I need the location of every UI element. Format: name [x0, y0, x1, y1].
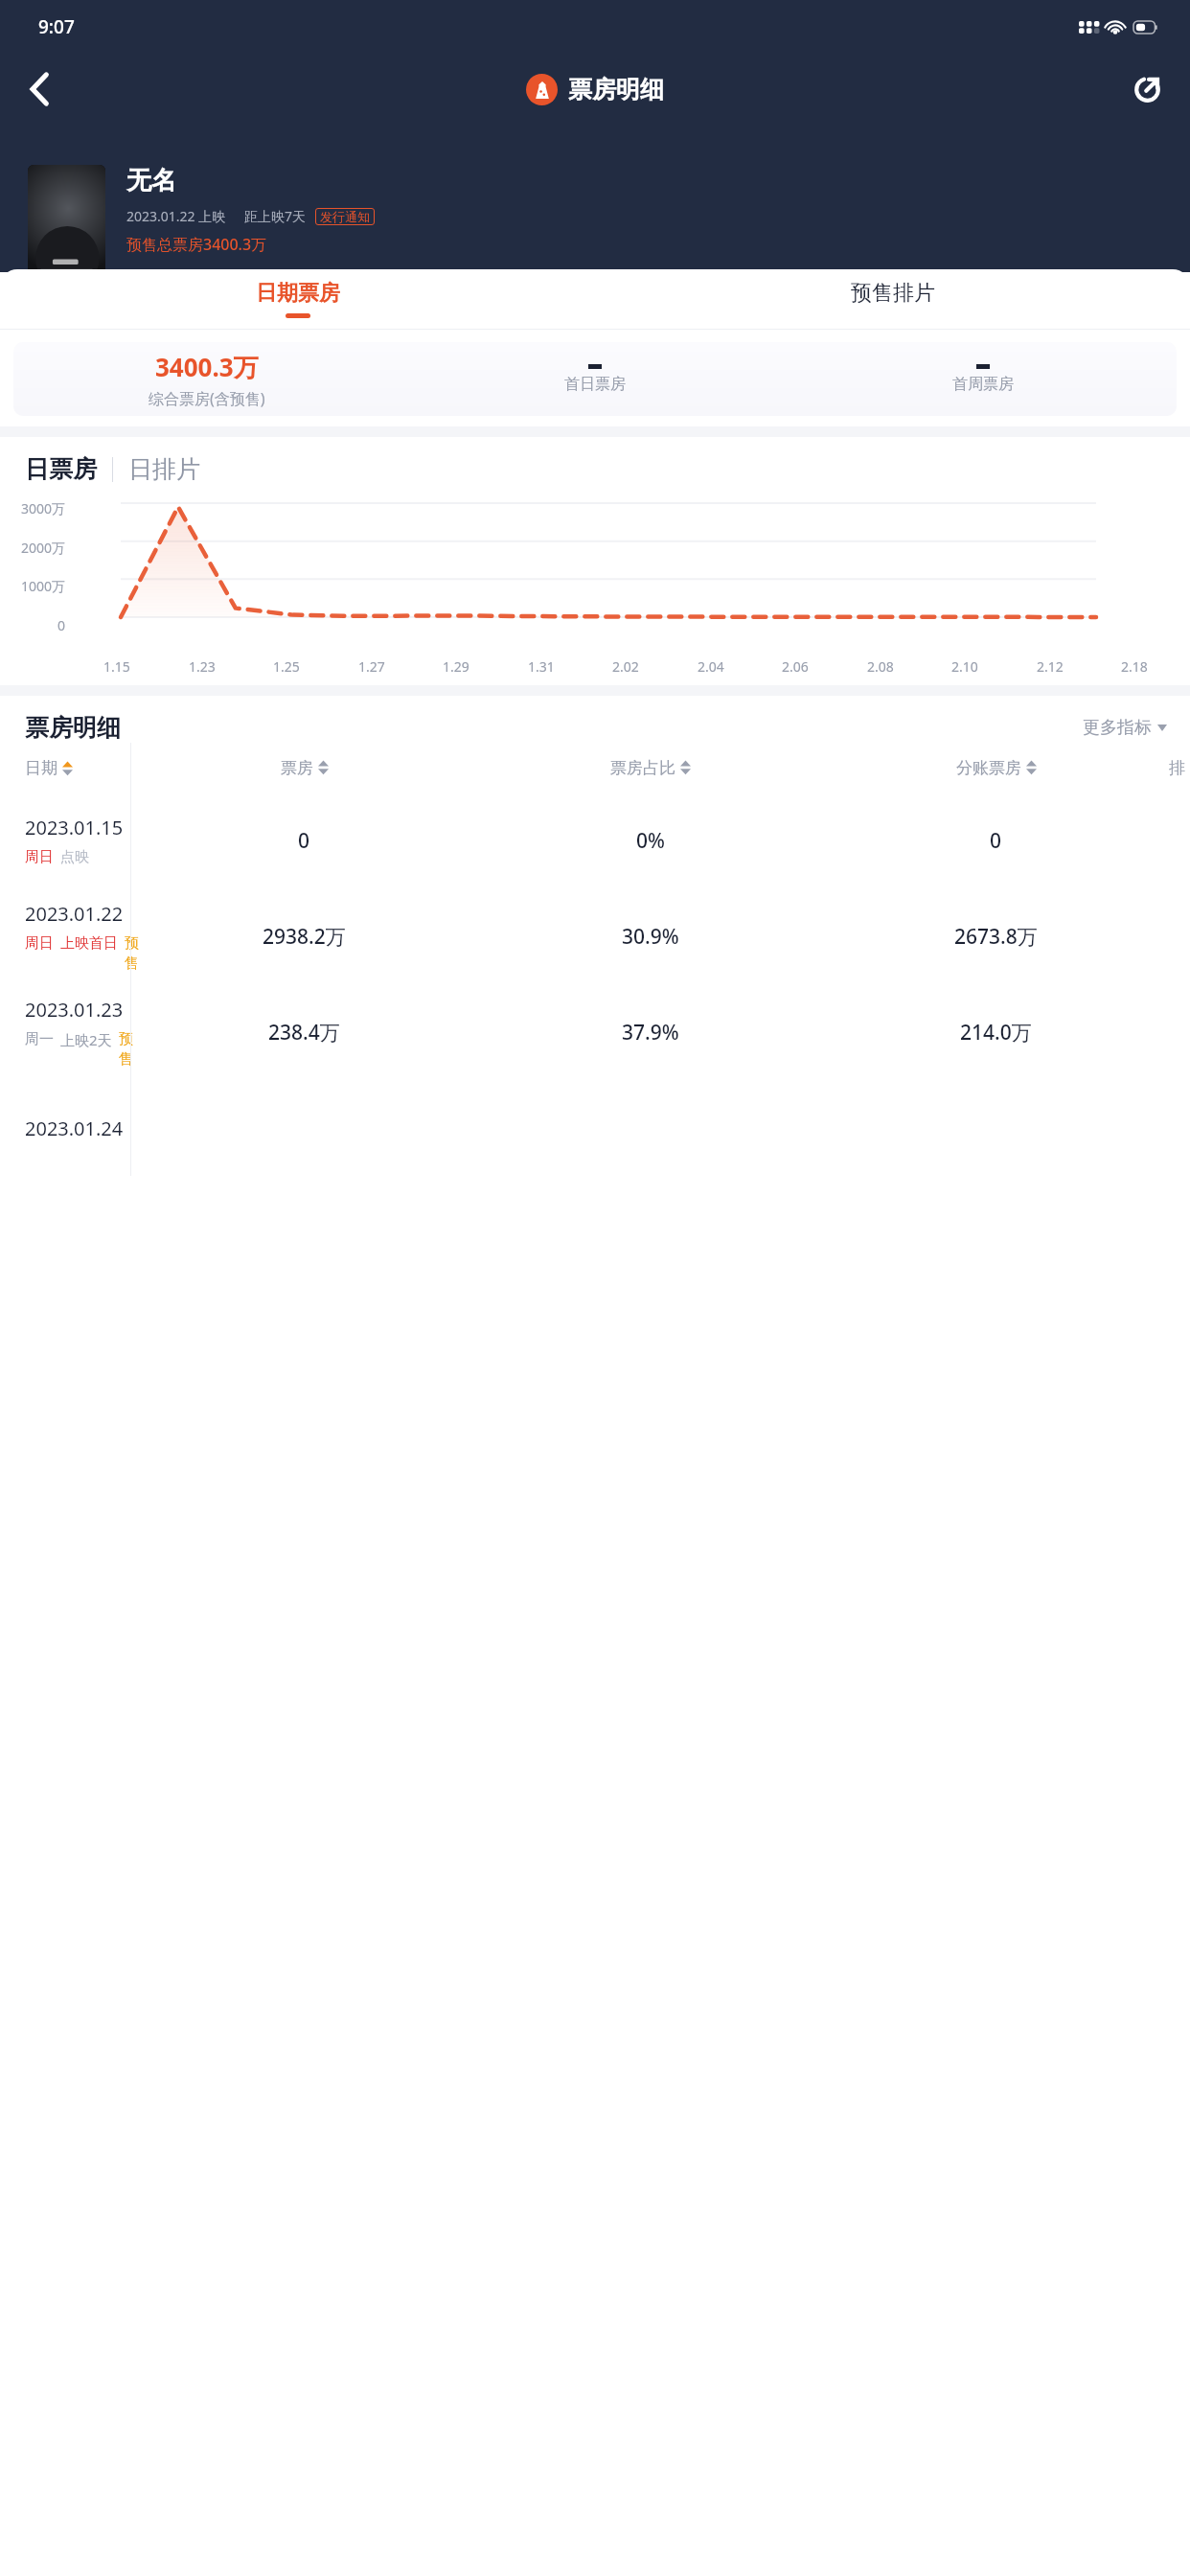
button[interactable]: 票房占比 [477, 743, 823, 793]
staticText: 2023.01.23 [25, 997, 124, 1023]
button[interactable]: 3400.3万 [13, 342, 1177, 416]
staticText: 238.4万 [268, 1019, 340, 1046]
staticText: 首日票房 [564, 375, 626, 394]
staticText: 2023.01.22 [25, 901, 124, 927]
staticText: 更多指标 [1083, 717, 1152, 739]
staticText: 上映2天 [60, 1030, 112, 1049]
staticText: 2.10 [951, 657, 978, 676]
button[interactable]: 无名 [28, 165, 1162, 283]
button[interactable]: 票房 [131, 743, 477, 793]
staticText: 分账票房 [956, 758, 1021, 778]
staticText: 2.08 [867, 657, 894, 676]
staticText: 9:07 [38, 14, 75, 39]
staticText: 1.31 [528, 657, 555, 676]
staticText: 37.9% [622, 1019, 679, 1046]
staticText: 1000万 [21, 577, 66, 595]
staticText: 1.23 [189, 657, 216, 676]
staticText: 日票房 [25, 454, 97, 484]
staticText: 上映首日 [60, 934, 118, 953]
staticText: 票房明细 [25, 713, 121, 743]
staticText: 票房占比 [610, 758, 675, 778]
staticText: 无名 [126, 165, 176, 196]
staticText: 2.02 [612, 657, 639, 676]
staticText: 预售 [125, 934, 130, 973]
button[interactable]: 2023.01.23 [0, 984, 1190, 1080]
button[interactable]: 分账票房 [823, 743, 1169, 793]
staticText: 发行通知 [320, 209, 370, 224]
staticText: 0 [57, 616, 66, 634]
button[interactable]: 日期票房 [0, 269, 595, 329]
staticText: 预售 [119, 1030, 130, 1069]
staticText: 周日 [25, 848, 54, 866]
button[interactable]: 日票房 [25, 454, 97, 484]
staticText: 2023.01.24 [25, 1115, 124, 1141]
staticText: 周一 [25, 1030, 54, 1048]
staticText: 2000万 [21, 539, 66, 557]
staticText: 综合票房(含预售) [149, 388, 265, 409]
staticText: 1.27 [358, 657, 385, 676]
staticText: 0 [298, 827, 310, 855]
staticText: 日排片 [128, 454, 200, 484]
staticText: 3000万 [21, 499, 66, 517]
button[interactable]: Back [13, 63, 65, 115]
staticText: 票房明细 [568, 75, 664, 104]
staticText: 日期 [25, 758, 57, 778]
staticText: 票房 [281, 758, 313, 778]
staticText: 1.29 [443, 657, 469, 676]
button[interactable]: 2023.01.15 [0, 793, 1190, 888]
staticText: 1.15 [103, 657, 130, 676]
staticText: 2673.8万 [954, 923, 1038, 951]
button[interactable]: Share [1121, 63, 1173, 115]
staticText: 2.18 [1121, 657, 1148, 676]
staticText: 1.25 [273, 657, 300, 676]
staticText: 0 [990, 827, 1002, 855]
staticText: 2023.01.15 [25, 815, 124, 840]
staticText: 2.04 [698, 657, 724, 676]
staticText: 点映 [60, 848, 89, 866]
button[interactable]: 2023.01.24 [0, 1080, 1190, 1176]
staticText: 预售总票房3400.3万 [126, 234, 267, 255]
staticText: 距上映7天 [244, 207, 307, 225]
staticText: 30.9% [622, 923, 679, 951]
button[interactable]: 预售排片 [595, 269, 1190, 329]
button[interactable]: 日期 [25, 758, 130, 778]
button[interactable]: 更多指标 [1083, 717, 1167, 739]
button[interactable]: 日排片 [128, 454, 200, 484]
staticText: 首周票房 [952, 375, 1014, 394]
staticText: 3400.3万 [155, 350, 259, 384]
staticText: 2.12 [1037, 657, 1064, 676]
staticText: 0% [636, 827, 665, 855]
staticText: 日期票房 [256, 280, 340, 307]
staticText: 排 [1169, 758, 1185, 778]
staticText: 2023.01.22 上映 [126, 207, 226, 225]
button[interactable]: 2023.01.22 [0, 888, 1190, 984]
staticText: 2938.2万 [263, 923, 346, 951]
button[interactable]: 发行通知 [320, 209, 370, 224]
staticText: 214.0万 [960, 1019, 1032, 1046]
staticText: 2.06 [782, 657, 809, 676]
staticText: 周日 [25, 934, 54, 953]
staticText: 预售排片 [851, 280, 935, 307]
